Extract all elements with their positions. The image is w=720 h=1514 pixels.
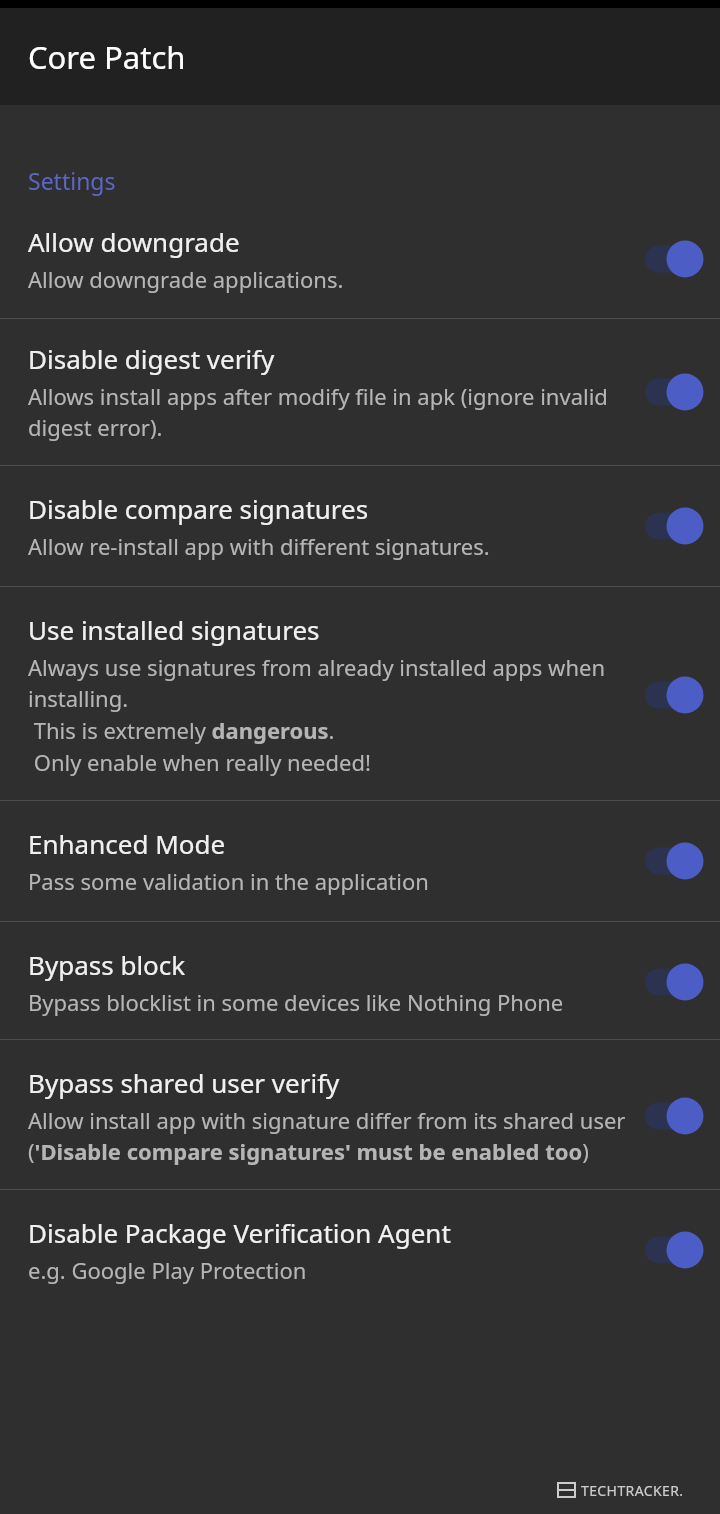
button[interactable]: Use installed signatures (0, 587, 720, 800)
button[interactable]: Disable compare signatures (0, 466, 720, 586)
staticText: Disable compare signatures (28, 491, 369, 526)
staticText: Settings (28, 165, 116, 196)
staticText: Bypass blocklist in some devices like No… (28, 987, 564, 1017)
button[interactable]: Toggle (634, 838, 710, 884)
button[interactable]: Bypass block (0, 922, 720, 1039)
button[interactable]: Enhanced Mode (0, 801, 720, 921)
staticText: Always use signatures from already insta… (28, 652, 626, 778)
staticText: Allow install app with signature differ … (28, 1105, 626, 1167)
staticText: Disable Package Verification Agent (28, 1215, 451, 1250)
staticText: Disable digest verify (28, 341, 275, 376)
staticText: e.g. Google Play Protection (28, 1255, 307, 1285)
button[interactable]: Toggle (634, 1227, 710, 1273)
staticText: Use installed signatures (28, 612, 320, 647)
staticText: Bypass block (28, 947, 186, 982)
button[interactable]: Toggle (634, 503, 710, 549)
staticText: Bypass shared user verify (28, 1065, 340, 1100)
staticText: TECHTRACKER. (581, 1481, 684, 1500)
button[interactable]: Toggle (634, 1093, 710, 1139)
staticText: Pass some validation in the application (28, 866, 429, 896)
staticText: Allows install apps after modify file in… (28, 381, 626, 443)
staticText: Allow downgrade applications. (28, 264, 344, 294)
staticText: Allow re-install app with different sign… (28, 531, 490, 561)
button[interactable]: Disable digest verify (0, 319, 720, 465)
button[interactable]: Toggle (634, 959, 710, 1005)
button[interactable]: Toggle (634, 236, 710, 282)
button[interactable]: Toggle (634, 369, 710, 415)
staticText: Core Patch (28, 36, 186, 78)
staticText: Enhanced Mode (28, 826, 226, 861)
button[interactable]: Disable Package Verification Agent (0, 1190, 720, 1310)
staticText: Allow downgrade (28, 224, 240, 259)
button[interactable]: Bypass shared user verify (0, 1040, 720, 1189)
button[interactable]: Allow downgrade (0, 224, 720, 318)
button[interactable]: Toggle (634, 672, 710, 718)
